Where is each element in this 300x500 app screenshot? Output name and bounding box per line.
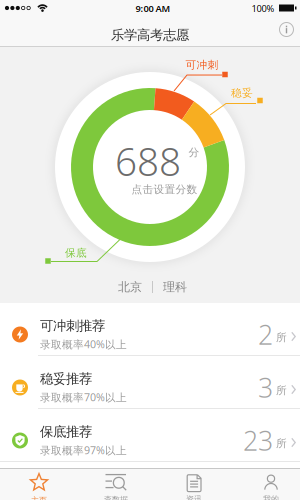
staticText: 北京	[118, 280, 142, 294]
staticText: 录取概率40%以上	[40, 337, 127, 351]
staticText: 稳妥推荐	[40, 371, 92, 387]
button[interactable]	[275, 18, 297, 40]
staticText: 保底	[65, 246, 87, 259]
button[interactable]: 可冲刺推荐	[0, 303, 300, 355]
button[interactable]: 我的	[241, 472, 300, 500]
staticText: 资讯	[186, 494, 202, 500]
button[interactable]: 保底推荐	[0, 409, 300, 461]
staticText: 100%	[251, 2, 274, 15]
button[interactable]: 北京	[92, 277, 212, 297]
staticText: 所	[276, 331, 287, 344]
staticText: 所	[276, 437, 287, 450]
staticText: 23	[243, 423, 273, 458]
staticText: 主页	[31, 495, 47, 500]
staticText: 可冲刺推荐	[40, 318, 105, 334]
staticText: 理科	[163, 280, 187, 294]
staticText: 录取概率97%以上	[40, 443, 127, 457]
staticText: 9:00 AM	[135, 2, 170, 15]
staticText: 688	[115, 135, 181, 187]
button[interactable]: 688	[0, 46, 300, 304]
button[interactable]: 稳妥推荐	[0, 356, 300, 408]
staticText: 查数据	[104, 495, 128, 500]
staticText: 我的	[263, 494, 279, 500]
staticText: 保底推荐	[40, 424, 92, 440]
staticText: 分	[188, 146, 199, 159]
button[interactable]: 主页	[9, 472, 69, 500]
staticText: 稳妥	[231, 86, 253, 99]
staticText: 所	[276, 384, 287, 397]
button[interactable]: 查数据	[86, 472, 146, 500]
staticText: 可冲刺	[185, 58, 218, 71]
staticText: 点击设置分数	[131, 183, 197, 196]
staticText: 乐学高考志愿	[111, 27, 189, 43]
staticText: 2	[258, 317, 273, 352]
button[interactable]: 资讯	[164, 472, 224, 500]
staticText: 录取概率70%以上	[40, 390, 127, 404]
staticText: 3	[258, 370, 273, 405]
